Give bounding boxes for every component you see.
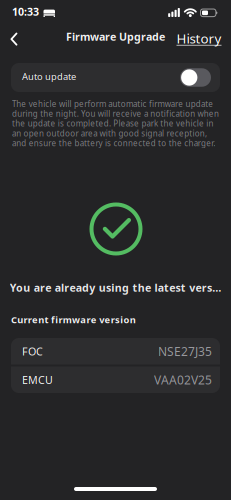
staticText: You are already using the latest vers… (10, 280, 221, 295)
staticText: Current firmware version (11, 313, 136, 326)
staticText: 10:33 (12, 4, 39, 19)
staticText: FOC (22, 344, 43, 358)
staticText: EMCU (22, 373, 53, 387)
staticText: History (176, 29, 221, 47)
staticText: The vehicle will perform automatic firmw… (12, 98, 219, 148)
staticText: NSE27J35 (158, 343, 212, 359)
staticText: Auto update (22, 70, 76, 83)
staticText: Firmware Upgrade (66, 29, 165, 44)
staticText: VAA02V25 (154, 372, 212, 388)
